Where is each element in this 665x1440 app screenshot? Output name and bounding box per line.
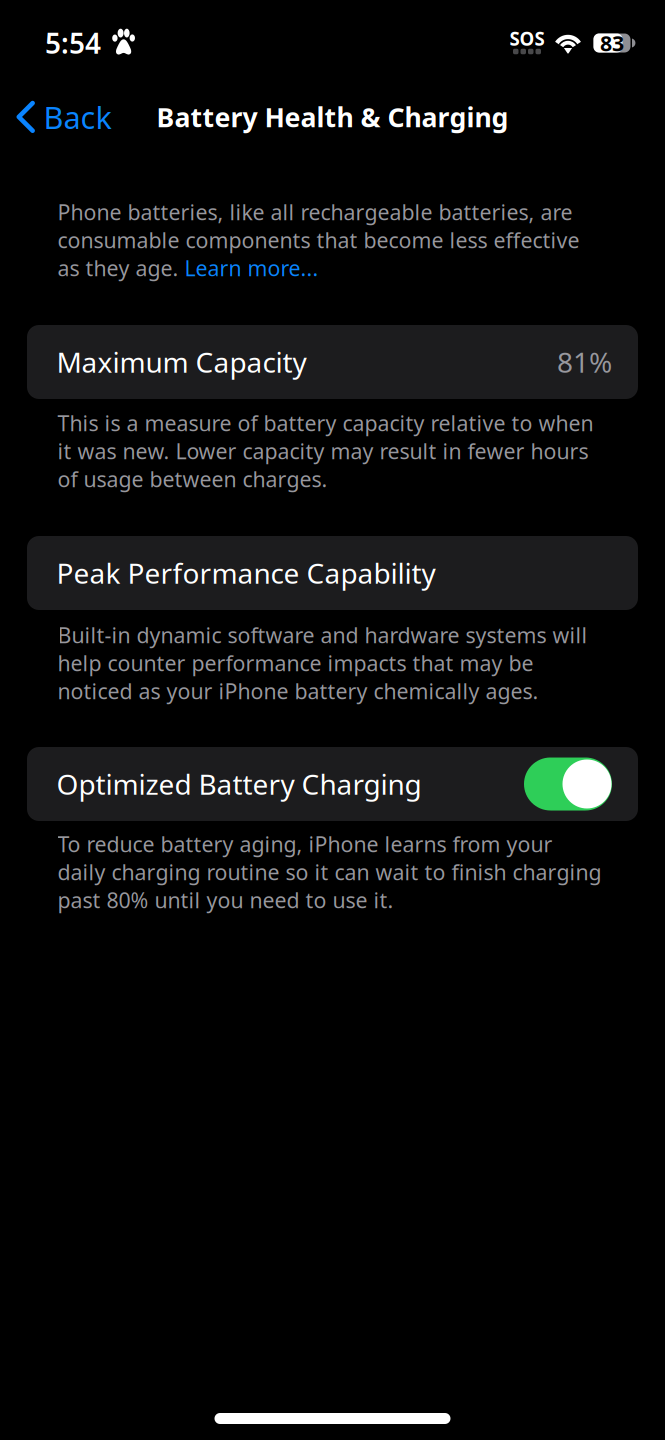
staticText: Back xyxy=(43,97,111,137)
staticText: of usage between charges. xyxy=(57,465,327,493)
staticText: Learn more... xyxy=(184,254,318,282)
staticText: 83 xyxy=(600,29,624,57)
staticText: daily charging routine so it can wait to… xyxy=(57,858,601,886)
staticText: To reduce battery aging, iPhone learns f… xyxy=(57,830,552,858)
staticText: 81% xyxy=(557,343,612,381)
staticText: consumable components that become less e… xyxy=(57,226,579,254)
staticText: 5:54 xyxy=(45,24,101,62)
staticText: Optimized Battery Charging xyxy=(56,765,421,803)
staticText: SOS xyxy=(509,26,544,51)
button[interactable]: Maximum Capacity xyxy=(27,325,638,399)
staticText: as they age. xyxy=(57,254,184,282)
staticText: Maximum Capacity xyxy=(56,343,306,381)
staticText: Phone batteries, like all rechargeable b… xyxy=(57,198,572,226)
staticText: past 80% until you need to use it. xyxy=(57,886,393,914)
staticText: it was new. Lower capacity may result in… xyxy=(57,437,588,465)
button[interactable]: Optimized Battery Charging xyxy=(27,747,638,821)
staticText: Built-in dynamic software and hardware s… xyxy=(57,621,587,649)
button[interactable]: Learn more... xyxy=(184,254,318,282)
button[interactable]: Back xyxy=(0,90,123,144)
staticText: noticed as your iPhone battery chemicall… xyxy=(57,677,538,705)
staticText: This is a measure of battery capacity re… xyxy=(57,409,593,437)
button[interactable]: Peak Performance Capability xyxy=(27,536,638,610)
staticText: help counter performance impacts that ma… xyxy=(57,649,533,677)
staticText: Battery Health & Charging xyxy=(156,99,508,135)
staticText: Peak Performance Capability xyxy=(56,554,435,592)
button[interactable]: Optimized Battery Charging, on xyxy=(524,757,612,810)
